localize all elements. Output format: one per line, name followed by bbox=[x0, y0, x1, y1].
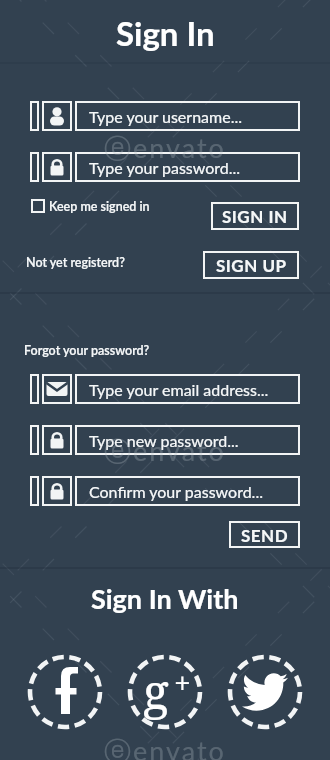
staticText: Confirm your password... bbox=[89, 482, 263, 501]
staticText: ⓔenvato bbox=[104, 434, 226, 469]
staticText: Type your password... bbox=[89, 158, 241, 177]
staticText: ⓔenvato bbox=[104, 734, 226, 760]
staticText: SIGN IN bbox=[222, 206, 288, 226]
staticText: Sign In With bbox=[91, 582, 239, 614]
staticText: SEND bbox=[241, 525, 289, 545]
button[interactable]: Confirm your password... bbox=[75, 476, 300, 506]
staticText: Keep me signed in bbox=[49, 199, 150, 214]
staticText: Type your username... bbox=[89, 107, 242, 126]
button[interactable]: g bbox=[136, 658, 176, 722]
staticText: Type your email address... bbox=[89, 380, 269, 399]
staticText: SIGN UP bbox=[216, 255, 287, 275]
button[interactable] bbox=[31, 199, 45, 213]
staticText: + bbox=[174, 662, 191, 692]
button[interactable] bbox=[40, 662, 90, 722]
button[interactable]: SEND bbox=[229, 521, 300, 548]
staticText: ⓔenvato bbox=[104, 131, 226, 166]
button[interactable]: SIGN IN bbox=[211, 202, 299, 230]
staticText: Type new password... bbox=[89, 431, 239, 450]
staticText: Forgot your password? bbox=[24, 343, 150, 358]
button[interactable]: Type your password... bbox=[75, 152, 300, 182]
staticText: g bbox=[143, 658, 169, 722]
button[interactable] bbox=[238, 662, 294, 722]
staticText: Sign In bbox=[116, 13, 215, 53]
button[interactable]: Type your email address... bbox=[75, 374, 300, 404]
button[interactable]: Type new password... bbox=[75, 425, 300, 455]
button[interactable]: Type your username... bbox=[75, 101, 300, 131]
staticText: Not yet registerd? bbox=[26, 255, 125, 270]
button[interactable]: SIGN UP bbox=[203, 251, 299, 279]
